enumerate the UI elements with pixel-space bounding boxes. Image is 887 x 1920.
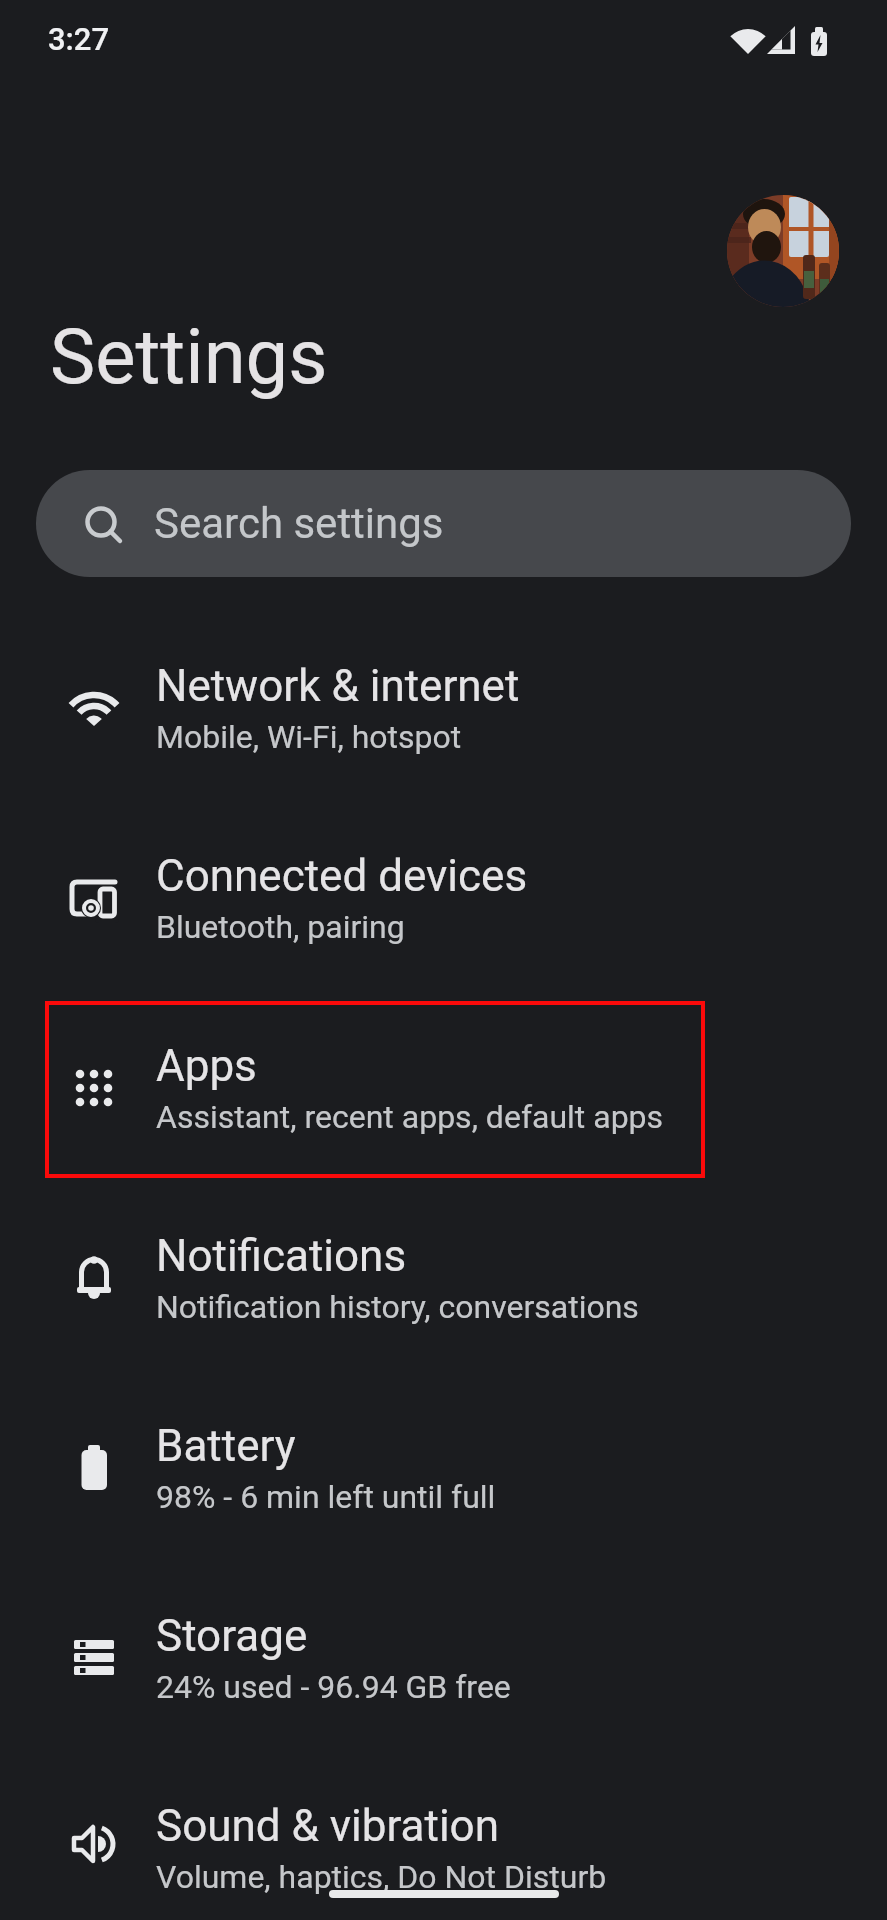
staticText: Storage (156, 1610, 308, 1662)
staticText: Battery (156, 1420, 296, 1472)
button[interactable]: Connected devices (0, 809, 887, 999)
button[interactable]: Storage (0, 1569, 887, 1759)
staticText: Sound & vibration (156, 1800, 499, 1852)
staticText: Network & internet (156, 660, 520, 712)
staticText: 3:27 (48, 21, 110, 57)
staticText: Apps (156, 1040, 257, 1092)
staticText: 98% - 6 min left until full (156, 1478, 496, 1516)
staticText: Notification history, conversations (156, 1288, 639, 1326)
staticText: 24% used - 96.94 GB free (156, 1668, 511, 1706)
staticText: Volume, haptics, Do Not Disturb (156, 1858, 607, 1896)
staticText: Mobile, Wi-Fi, hotspot (156, 718, 462, 756)
staticText: Notifications (156, 1230, 407, 1282)
button[interactable]: Search settings (36, 470, 851, 577)
staticText: Bluetooth, pairing (156, 908, 405, 946)
staticText: Search settings (154, 499, 444, 548)
button[interactable]: Apps (0, 999, 887, 1189)
button[interactable] (727, 195, 839, 307)
staticText: Connected devices (156, 850, 528, 902)
button[interactable]: Sound & vibration (0, 1759, 887, 1920)
button[interactable]: Battery (0, 1379, 887, 1569)
staticText: Settings (50, 312, 328, 401)
button[interactable]: Notifications (0, 1189, 887, 1379)
button[interactable]: Network & internet (0, 619, 887, 809)
staticText: Assistant, recent apps, default apps (156, 1098, 664, 1136)
